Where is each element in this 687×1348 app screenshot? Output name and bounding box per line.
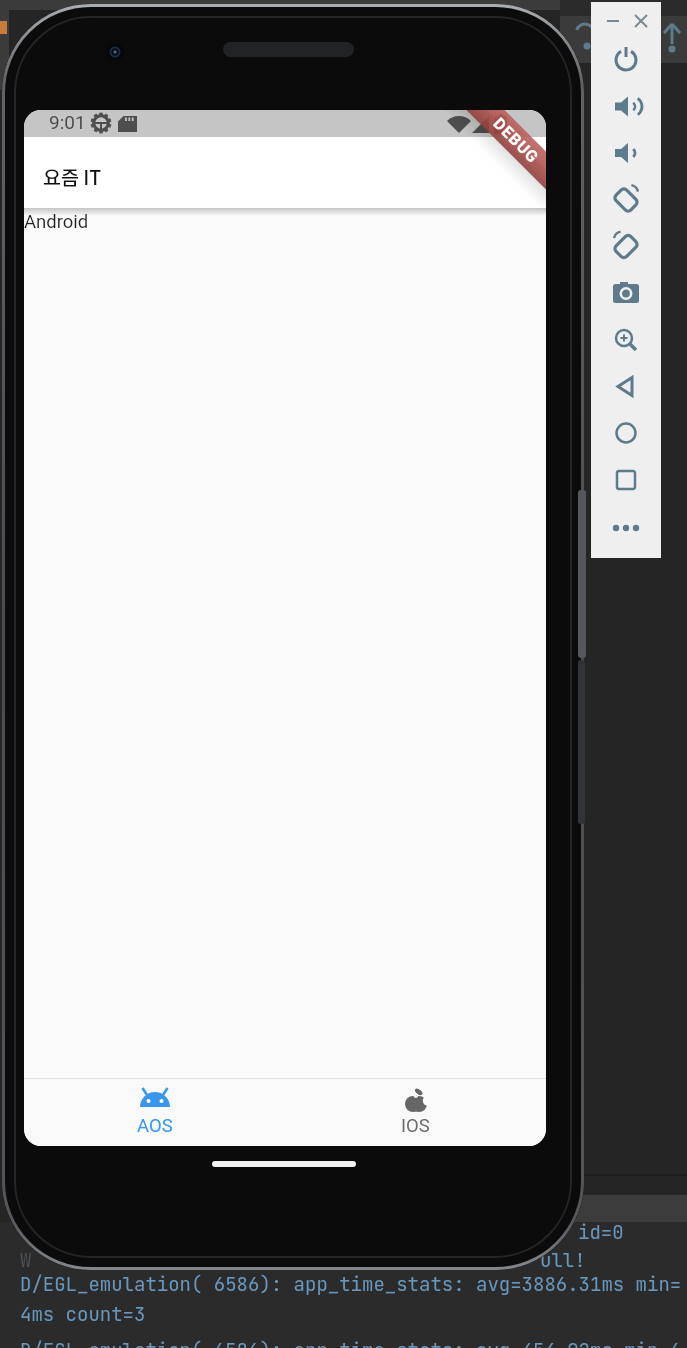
button[interactable] bbox=[591, 268, 661, 314]
staticText: D/EGL_emulation( 6586): app_time_stats: … bbox=[20, 1272, 682, 1297]
button[interactable] bbox=[591, 406, 661, 452]
button[interactable] bbox=[631, 11, 651, 31]
staticText: DEBUG bbox=[489, 114, 543, 168]
staticText: Android bbox=[24, 211, 89, 233]
staticText: IOS bbox=[401, 1115, 430, 1137]
button[interactable] bbox=[591, 176, 661, 222]
button[interactable] bbox=[591, 360, 661, 406]
staticText: D/EGL_emulation( 6586): app_time_stats: … bbox=[20, 1338, 682, 1348]
staticText: ull! bbox=[540, 1248, 586, 1273]
button[interactable]: AOS bbox=[24, 1079, 285, 1146]
staticText: id=0 bbox=[578, 1220, 624, 1245]
button[interactable] bbox=[591, 222, 661, 268]
button[interactable] bbox=[591, 498, 661, 544]
button[interactable] bbox=[591, 452, 661, 498]
button[interactable] bbox=[599, 11, 619, 31]
button[interactable] bbox=[591, 84, 661, 130]
staticText: W bbox=[20, 1248, 32, 1273]
button[interactable] bbox=[591, 38, 661, 84]
staticText: 요즘 IT bbox=[43, 162, 102, 190]
staticText: 9:01 bbox=[49, 111, 86, 133]
button[interactable] bbox=[591, 314, 661, 360]
staticText: AOS bbox=[137, 1115, 173, 1137]
staticText: 4ms count=3 bbox=[20, 1302, 146, 1327]
button[interactable]: IOS bbox=[285, 1079, 546, 1146]
button[interactable] bbox=[591, 130, 661, 176]
